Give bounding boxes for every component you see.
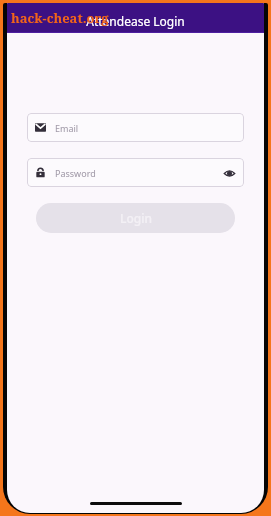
staticText: Attendease Login xyxy=(86,13,185,29)
button[interactable]: Email xyxy=(27,113,244,142)
button[interactable]: Show password xyxy=(222,166,236,180)
staticText: Login xyxy=(120,210,152,226)
button[interactable]: Password xyxy=(27,158,244,187)
staticText: Email xyxy=(55,122,79,134)
staticText: hack-cheat.org xyxy=(11,9,109,27)
staticText: Password xyxy=(55,167,96,179)
button[interactable]: Login xyxy=(36,203,235,233)
